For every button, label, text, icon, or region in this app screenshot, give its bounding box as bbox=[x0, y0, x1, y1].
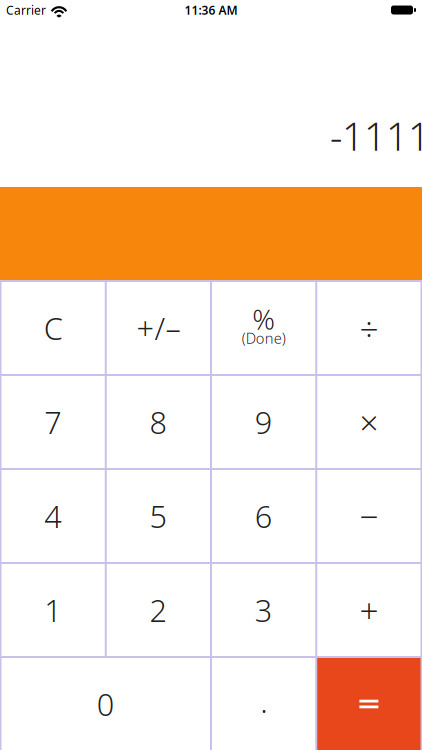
staticText: +/– bbox=[136, 308, 180, 348]
button[interactable]: 9 bbox=[212, 376, 315, 468]
button[interactable]: 2 bbox=[107, 564, 210, 656]
button[interactable]: % bbox=[212, 282, 315, 374]
button[interactable]: . bbox=[212, 658, 315, 750]
staticText: 5 bbox=[149, 496, 167, 536]
staticText: + bbox=[359, 588, 378, 632]
button[interactable]: C bbox=[1, 282, 105, 374]
staticText: 8 bbox=[149, 402, 167, 442]
staticText: 2 bbox=[149, 590, 167, 630]
staticText: 9 bbox=[255, 402, 273, 442]
button[interactable]: 0 bbox=[1, 658, 210, 750]
staticText: × bbox=[359, 400, 378, 444]
button[interactable]: + bbox=[317, 564, 420, 656]
staticText: 11:36 AM bbox=[184, 2, 237, 18]
button[interactable]: 4 bbox=[1, 470, 105, 562]
staticText: C bbox=[44, 308, 63, 348]
button[interactable]: 1 bbox=[1, 564, 105, 656]
staticText: 0 bbox=[97, 684, 115, 724]
staticText: . bbox=[260, 681, 267, 721]
button[interactable]: 8 bbox=[107, 376, 210, 468]
button[interactable]: 3 bbox=[212, 564, 315, 656]
staticText: ÷ bbox=[359, 306, 378, 350]
button[interactable]: 7 bbox=[1, 376, 105, 468]
button[interactable]: × bbox=[317, 376, 420, 468]
staticText: 6 bbox=[255, 496, 273, 536]
staticText: -1111 bbox=[330, 110, 422, 161]
staticText: % bbox=[252, 300, 275, 337]
staticText: (Done) bbox=[242, 328, 286, 348]
staticText: − bbox=[359, 494, 378, 538]
staticText: 1 bbox=[44, 590, 62, 630]
button[interactable]: 5 bbox=[107, 470, 210, 562]
button[interactable]: +/– bbox=[107, 282, 210, 374]
button[interactable]: Equals bbox=[317, 658, 420, 750]
staticText: 4 bbox=[44, 496, 62, 536]
staticText: Carrier bbox=[6, 2, 46, 18]
button[interactable]: − bbox=[317, 470, 420, 562]
button[interactable]: ÷ bbox=[317, 282, 420, 374]
staticText: 7 bbox=[44, 402, 62, 442]
button[interactable]: 6 bbox=[212, 470, 315, 562]
staticText: 3 bbox=[255, 590, 273, 630]
